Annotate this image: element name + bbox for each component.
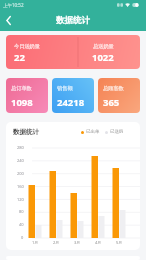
staticText: 上午10:52 xyxy=(3,2,24,8)
staticText: 0 xyxy=(21,235,24,240)
staticText: 销售额 xyxy=(57,85,73,92)
staticText: 240 xyxy=(17,158,24,163)
staticText: 数据统计 xyxy=(13,128,39,136)
button[interactable]: 总顾客数 xyxy=(98,78,140,113)
staticText: 280 xyxy=(17,145,24,150)
staticText: 1月 xyxy=(32,240,39,245)
staticText: 今日送奶量 xyxy=(14,43,40,50)
staticText: 总订单数 xyxy=(11,85,32,92)
button[interactable]: 今日送奶量 xyxy=(6,35,140,69)
staticText: 80 xyxy=(19,209,24,214)
staticText: 160 xyxy=(17,184,24,189)
staticText: 已送奶 xyxy=(110,129,124,135)
staticText: 120 xyxy=(17,197,24,202)
staticText: 1022 xyxy=(92,51,114,64)
staticText: 总顾客数 xyxy=(103,85,124,92)
staticText: 40 xyxy=(19,222,24,227)
staticText: 已出单 xyxy=(86,129,100,135)
staticText: 200 xyxy=(17,171,24,176)
staticText: 24218 xyxy=(57,96,85,109)
button[interactable]: 销售额 xyxy=(52,78,94,113)
staticText: 数据统计 xyxy=(56,15,90,26)
staticText: 总送奶量 xyxy=(93,43,114,50)
staticText: 3月 xyxy=(74,240,81,245)
staticText: 5月 xyxy=(116,240,123,245)
staticText: 22 xyxy=(14,51,25,64)
button[interactable]: 总订单数 xyxy=(6,78,48,113)
button[interactable] xyxy=(0,10,18,31)
staticText: 2月 xyxy=(53,240,60,245)
staticText: 4月 xyxy=(95,240,102,245)
staticText: 365 xyxy=(103,96,120,109)
staticText: 1098 xyxy=(11,96,33,109)
